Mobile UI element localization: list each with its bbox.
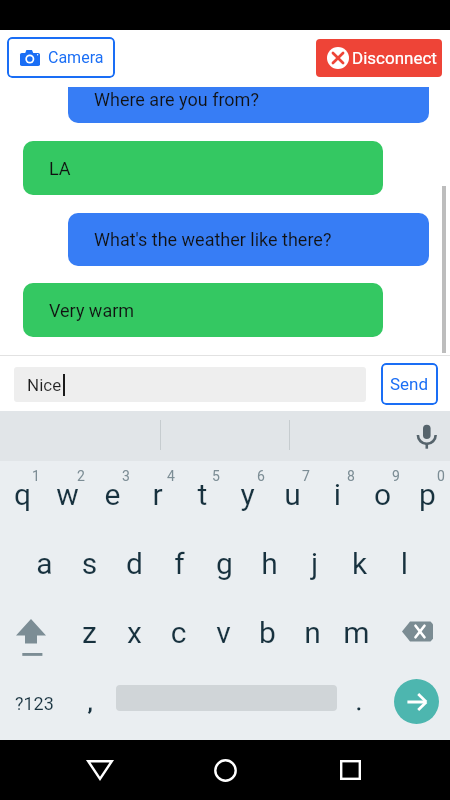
staticText: , — [88, 690, 93, 716]
button[interactable]: Backspace — [383, 602, 450, 666]
staticText: x — [112, 615, 157, 650]
button[interactable]: Disconnect — [316, 39, 442, 77]
staticText: Send — [390, 374, 429, 394]
button[interactable]: 6 — [225, 461, 270, 533]
button[interactable]: Recents — [326, 740, 374, 800]
staticText: 1 — [32, 468, 40, 484]
button[interactable]: Home — [201, 740, 249, 800]
staticText: LA — [49, 158, 71, 179]
staticText: p — [405, 477, 450, 512]
staticText: m — [334, 615, 379, 650]
staticText: g — [202, 546, 247, 581]
staticText: u — [270, 477, 315, 512]
staticText: w — [45, 477, 90, 512]
staticText: j — [292, 546, 337, 581]
button[interactable]: x — [112, 602, 157, 666]
staticText: . — [356, 690, 362, 716]
button[interactable]: l — [382, 533, 427, 597]
staticText: b — [245, 615, 290, 650]
button[interactable]: Nice — [14, 367, 366, 402]
button[interactable]: k — [337, 533, 382, 597]
button[interactable]: . — [340, 673, 378, 733]
button[interactable]: Back — [76, 740, 124, 800]
button[interactable]: Camera — [7, 37, 115, 78]
staticText: v — [201, 615, 246, 650]
button[interactable]: Very warm — [23, 283, 383, 337]
button[interactable]: Shift — [0, 602, 67, 666]
button[interactable]: 9 — [360, 461, 405, 533]
staticText: n — [290, 615, 335, 650]
button[interactable]: , — [70, 673, 110, 733]
button[interactable]: z — [67, 602, 112, 666]
button[interactable]: h — [247, 533, 292, 597]
staticText: r — [135, 477, 180, 512]
button[interactable]: What's the weather like there? — [68, 213, 429, 266]
button[interactable]: j — [292, 533, 337, 597]
button[interactable]: m — [334, 602, 379, 666]
staticText: Where are you from? — [94, 89, 259, 110]
staticText: 6 — [257, 468, 265, 484]
button[interactable]: a — [22, 533, 67, 597]
button[interactable]: Voice input — [409, 419, 445, 455]
button[interactable]: c — [156, 602, 201, 666]
button[interactable]: 3 — [90, 461, 135, 533]
button[interactable]: 5 — [180, 461, 225, 533]
staticText: d — [112, 546, 157, 581]
button[interactable]: Enter — [394, 679, 439, 724]
staticText: Camera — [48, 48, 104, 67]
staticText: s — [67, 546, 112, 581]
staticText: i — [315, 477, 360, 512]
button[interactable]: d — [112, 533, 157, 597]
staticText: h — [247, 546, 292, 581]
button[interactable]: 0 — [405, 461, 450, 533]
button[interactable]: Send — [381, 363, 438, 405]
button[interactable]: v — [201, 602, 246, 666]
button[interactable]: Where are you from? — [68, 87, 429, 123]
staticText: f — [157, 546, 202, 581]
staticText: q — [0, 477, 45, 512]
staticText: Nice — [27, 375, 62, 395]
staticText: 5 — [212, 468, 220, 484]
staticText: l — [382, 546, 427, 581]
button[interactable]: 8 — [315, 461, 360, 533]
staticText: 2 — [77, 468, 85, 484]
staticText: ?123 — [15, 693, 54, 714]
staticText: 4 — [167, 468, 175, 484]
staticText: Very warm — [49, 300, 135, 321]
button[interactable]: s — [67, 533, 112, 597]
staticText: k — [337, 546, 382, 581]
staticText: 7 — [302, 468, 310, 484]
staticText: t — [180, 477, 225, 512]
staticText: Disconnect — [352, 48, 437, 68]
button[interactable]: ?123 — [4, 673, 64, 733]
staticText: y — [225, 477, 270, 512]
button[interactable]: n — [290, 602, 335, 666]
button[interactable]: 4 — [135, 461, 180, 533]
staticText: 9 — [392, 468, 400, 484]
button[interactable]: g — [202, 533, 247, 597]
button[interactable]: 2 — [45, 461, 90, 533]
staticText: 8 — [347, 468, 355, 484]
button[interactable]: LA — [23, 141, 383, 195]
staticText: z — [67, 615, 112, 650]
button[interactable]: f — [157, 533, 202, 597]
button[interactable]: 7 — [270, 461, 315, 533]
staticText: 0 — [437, 468, 445, 484]
staticText: a — [22, 546, 67, 581]
staticText: c — [156, 615, 201, 650]
staticText: o — [360, 477, 405, 512]
button[interactable]: b — [245, 602, 290, 666]
staticText: e — [90, 477, 135, 512]
button[interactable]: 1 — [0, 461, 45, 533]
staticText: What's the weather like there? — [94, 229, 332, 250]
staticText: 3 — [122, 468, 130, 484]
